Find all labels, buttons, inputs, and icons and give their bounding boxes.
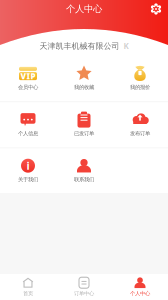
staticText: i	[26, 159, 29, 173]
staticText: 天津凯丰机械有限公司	[39, 41, 119, 51]
staticText: 首页	[23, 290, 33, 297]
staticText: 关于我们	[18, 176, 38, 183]
staticText: 订单中心	[74, 290, 94, 297]
button[interactable]: 已发订单	[56, 102, 112, 148]
button[interactable]: VIP	[0, 56, 56, 101]
staticText: 已发订单	[74, 130, 94, 137]
button[interactable]: Settings	[150, 3, 162, 15]
button[interactable]: 个人信息	[0, 102, 56, 148]
staticText: 个人中心	[66, 3, 102, 15]
button[interactable]: 发布订单	[112, 102, 168, 148]
staticText: 发布订单	[130, 130, 150, 137]
button[interactable]: 首页	[0, 274, 56, 300]
button[interactable]: 我的报价	[112, 56, 168, 101]
staticText: 我的报价	[130, 84, 150, 91]
staticText: 联系我们	[74, 176, 94, 183]
staticText: K	[123, 41, 128, 51]
staticText: VIP	[20, 71, 35, 81]
button[interactable]: 我的收藏	[56, 56, 112, 101]
staticText: 个人信息	[18, 130, 38, 137]
staticText: 会员中心	[18, 84, 38, 91]
button[interactable]: 联系我们	[56, 148, 112, 194]
button[interactable]: 个人中心	[112, 274, 168, 300]
staticText: 我的收藏	[74, 84, 94, 91]
button[interactable]: i	[0, 148, 56, 194]
button[interactable]: 订单中心	[56, 274, 112, 300]
staticText: 个人中心	[130, 290, 150, 297]
